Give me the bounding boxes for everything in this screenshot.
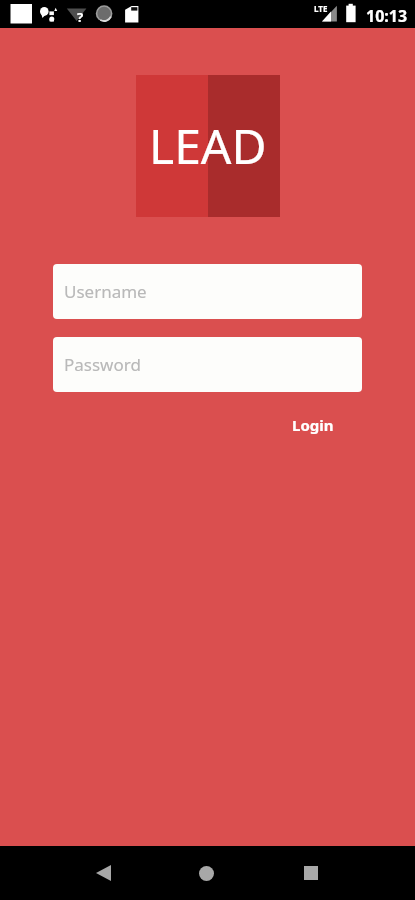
button[interactable]: Username (53, 264, 362, 319)
button[interactable]: Back (41, 846, 165, 900)
staticText: Password (64, 353, 141, 376)
staticText: LTE (314, 3, 328, 14)
staticText: ? (77, 8, 84, 26)
staticText: Login (292, 415, 334, 435)
button[interactable]: Recent apps (248, 846, 373, 900)
staticText: LEAD (149, 113, 267, 178)
button[interactable]: Home (165, 846, 248, 900)
button[interactable]: Password (53, 337, 362, 392)
staticText: 10:13 (366, 5, 408, 27)
button[interactable]: Login (278, 401, 348, 449)
staticText: Username (64, 280, 147, 303)
